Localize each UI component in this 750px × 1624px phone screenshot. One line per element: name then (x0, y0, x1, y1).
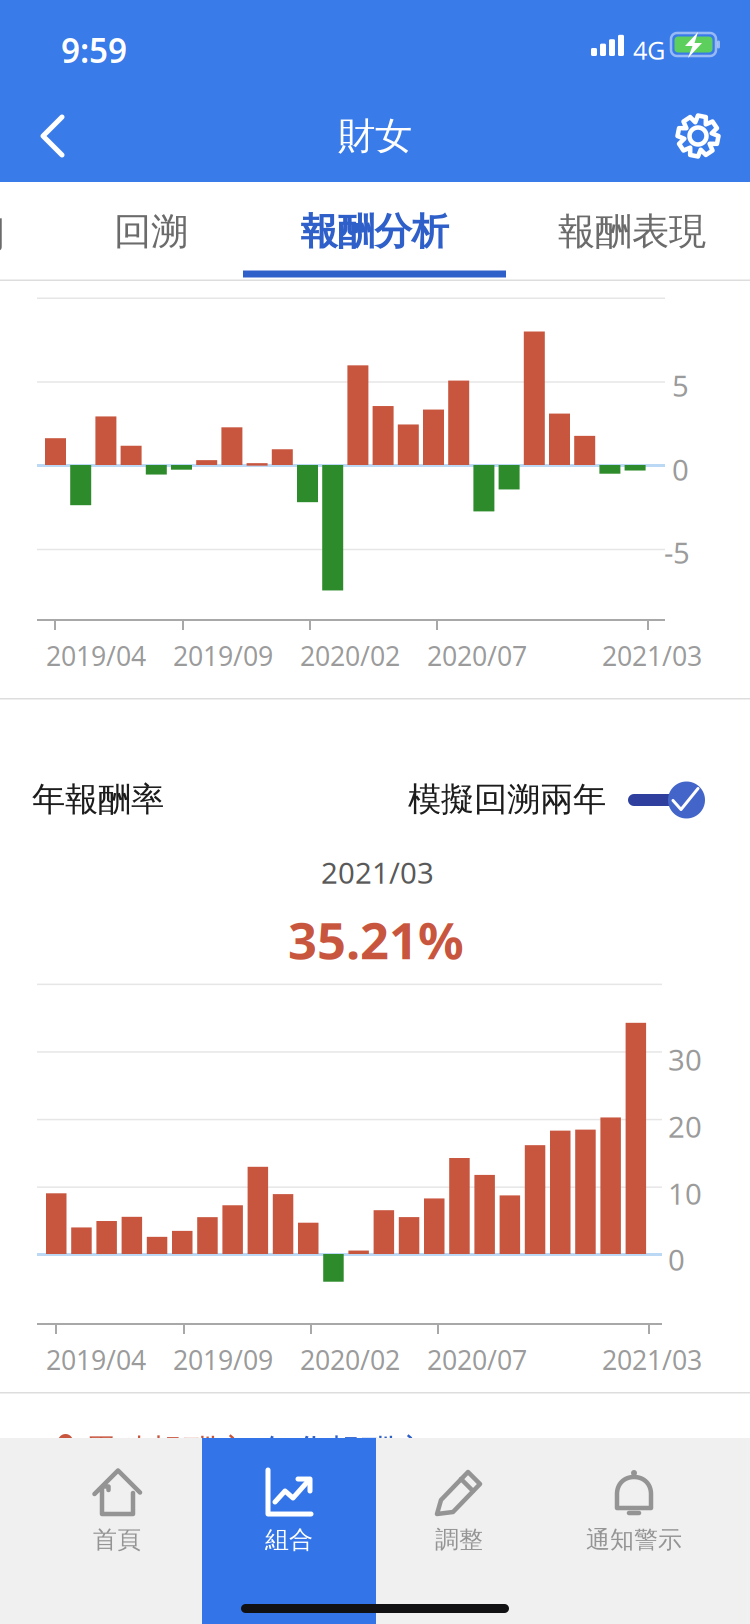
button[interactable]: 回溯 (61, 182, 241, 281)
button[interactable]: Settings (653, 92, 743, 180)
staticText: 4G (633, 33, 665, 67)
staticText: 調整 (435, 1525, 483, 1554)
staticText: 10 (668, 1174, 702, 1213)
staticText: 報酬分析 (300, 209, 448, 254)
button[interactable]: 調整 (372, 1438, 546, 1624)
staticText: 報酬表現 (558, 209, 706, 254)
button[interactable]: 報酬分析 (243, 182, 506, 281)
staticText: 30 (668, 1040, 702, 1079)
staticText: 2019/09 (173, 638, 273, 673)
staticText: 35.21% (288, 906, 464, 973)
staticText: 2019/04 (46, 1342, 146, 1377)
staticText: 0 (672, 450, 689, 489)
staticText: 溯 (0, 211, 4, 257)
staticText: 20 (668, 1107, 702, 1146)
staticText: 2019/09 (173, 1342, 273, 1377)
staticText: 年報酬率 (32, 779, 164, 820)
staticText: 5 (672, 366, 689, 405)
staticText: 2021/03 (321, 853, 434, 892)
button[interactable]: 組合 (202, 1438, 376, 1624)
button[interactable]: 首頁 (30, 1438, 204, 1624)
staticText: 2021/03 (602, 1342, 702, 1377)
staticText: 組合 (265, 1525, 313, 1554)
staticText: 0 (668, 1240, 685, 1279)
staticText: 通知警示 (586, 1525, 682, 1554)
staticText: 累積報酬率 (84, 1431, 249, 1472)
staticText: 2021/03 (602, 638, 702, 673)
button[interactable]: 通知警示 (547, 1438, 721, 1624)
staticText: 2020/07 (427, 638, 527, 673)
staticText: 回溯 (114, 209, 188, 254)
button[interactable]: Back (8, 92, 98, 180)
staticText: 2020/07 (427, 1342, 527, 1377)
staticText: 2020/02 (300, 1342, 400, 1377)
staticText: -5 (664, 533, 690, 572)
staticText: 首頁 (93, 1525, 141, 1554)
button[interactable]: 報酬表現 (527, 182, 737, 281)
button[interactable]: Simulate two year backtest (628, 772, 716, 828)
staticText: 2020/02 (300, 638, 400, 673)
staticText: 2019/04 (46, 638, 146, 673)
staticText: 年化報酬率 (262, 1431, 427, 1472)
staticText: 模擬回溯兩年 (408, 779, 606, 820)
staticText: 財女 (338, 113, 412, 159)
staticText: 9:59 (61, 28, 127, 72)
